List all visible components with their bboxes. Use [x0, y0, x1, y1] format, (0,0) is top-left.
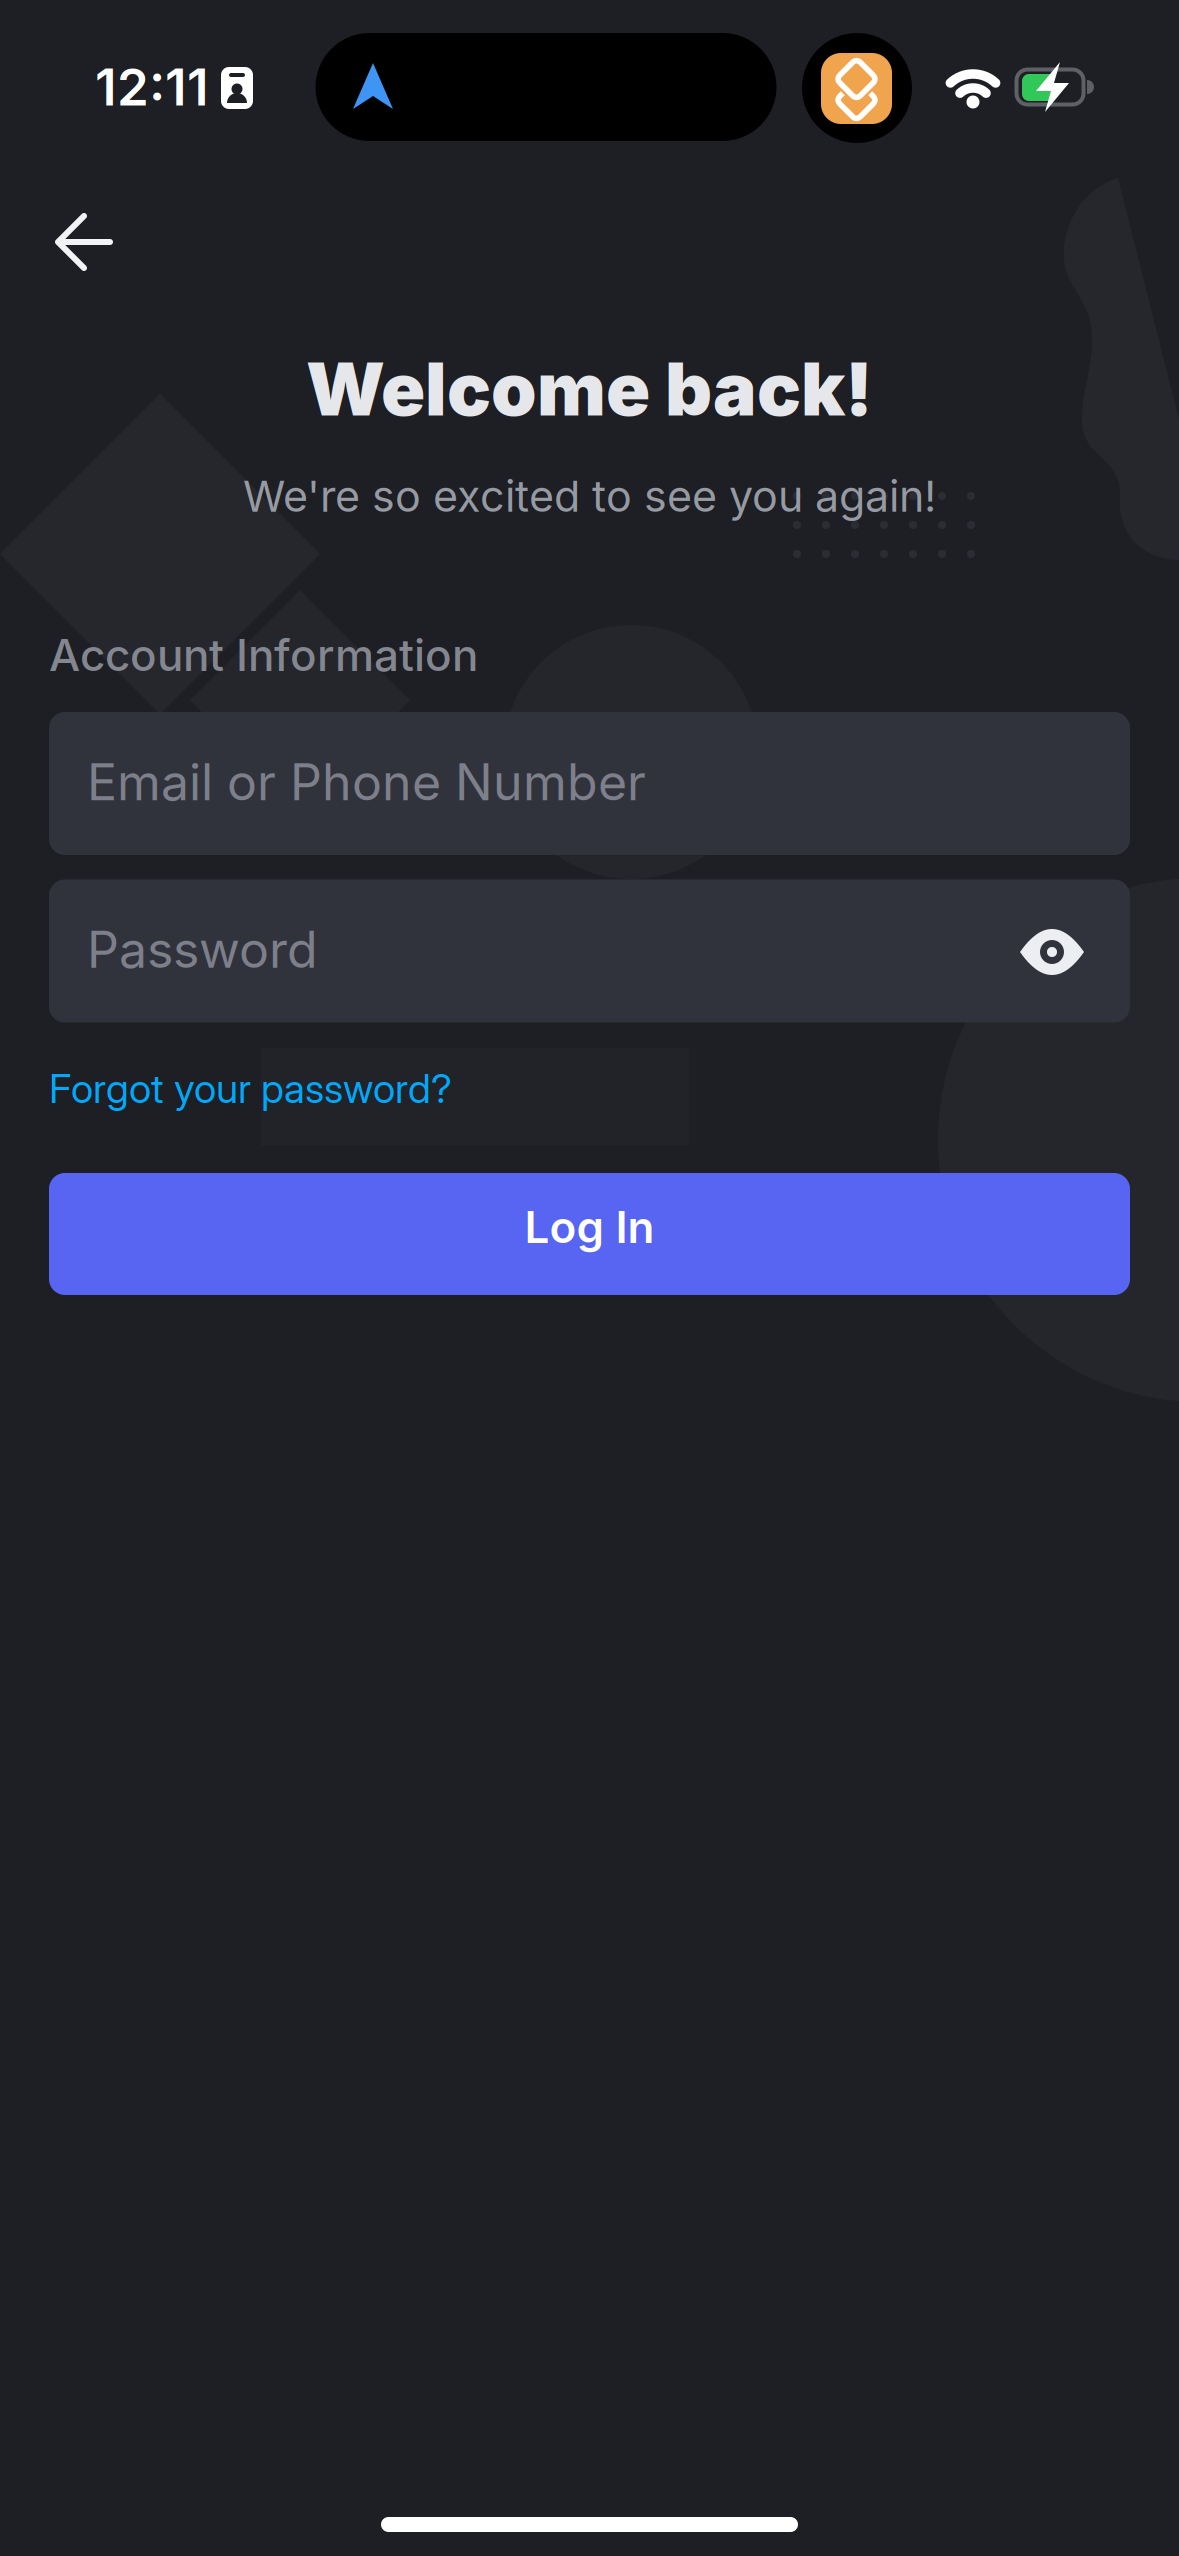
staticText: Log In [524, 1200, 654, 1254]
staticText: We're so excited to see you again! [243, 470, 936, 522]
staticText: Account Information [49, 628, 478, 682]
staticText: Password [87, 919, 318, 980]
staticText: Email or Phone Number [87, 752, 646, 812]
staticText: Welcome back! [306, 345, 873, 433]
staticText: 12:11 [95, 56, 209, 118]
staticText: Forgot your password? [49, 1064, 452, 1113]
